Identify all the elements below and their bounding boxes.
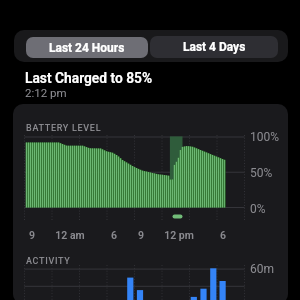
staticText: 12 pm: [164, 229, 194, 241]
staticText: ACTIVITY: [26, 256, 71, 267]
staticText: 9: [29, 229, 35, 241]
staticText: 9: [138, 229, 144, 241]
button[interactable]: Last 4 Days: [150, 36, 278, 58]
staticText: 0%: [250, 202, 266, 216]
staticText: 100%: [250, 130, 280, 144]
staticText: Last 4 Days: [183, 40, 246, 54]
staticText: Last Charged to 85%: [25, 70, 153, 86]
button[interactable]: Last 24 Hours: [26, 37, 148, 58]
staticText: 60m: [250, 262, 275, 276]
staticText: 50%: [250, 166, 273, 180]
staticText: 6: [220, 229, 226, 241]
staticText: Last 24 Hours: [49, 41, 125, 55]
staticText: 6: [111, 229, 117, 241]
staticText: 2:12 pm: [25, 86, 67, 99]
staticText: 12 am: [55, 229, 85, 241]
staticText: BATTERY LEVEL: [26, 123, 102, 134]
